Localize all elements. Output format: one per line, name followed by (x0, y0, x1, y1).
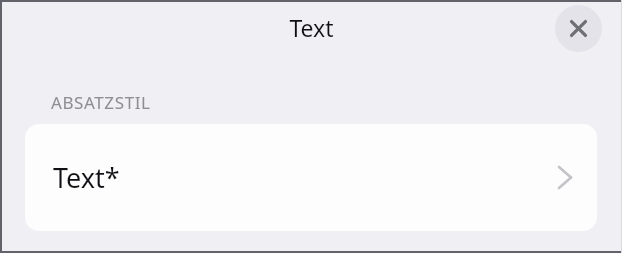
staticText: Text* (53, 159, 120, 196)
button[interactable]: Close (555, 5, 602, 52)
button[interactable]: Text* (25, 124, 597, 231)
staticText: ABSATZSTIL (51, 91, 151, 114)
staticText: Text (289, 12, 334, 43)
